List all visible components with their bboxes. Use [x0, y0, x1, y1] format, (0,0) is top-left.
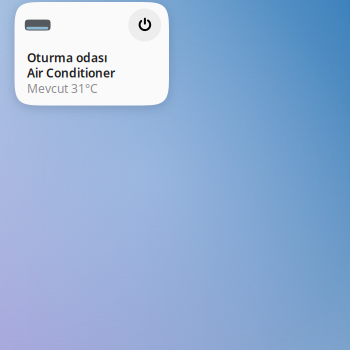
- staticText: Mevcut 31°C: [27, 80, 98, 96]
- staticText: Oturma odası: [27, 50, 107, 65]
- button[interactable]: Power: [128, 8, 161, 41]
- staticText: Air Conditioner: [27, 65, 115, 81]
